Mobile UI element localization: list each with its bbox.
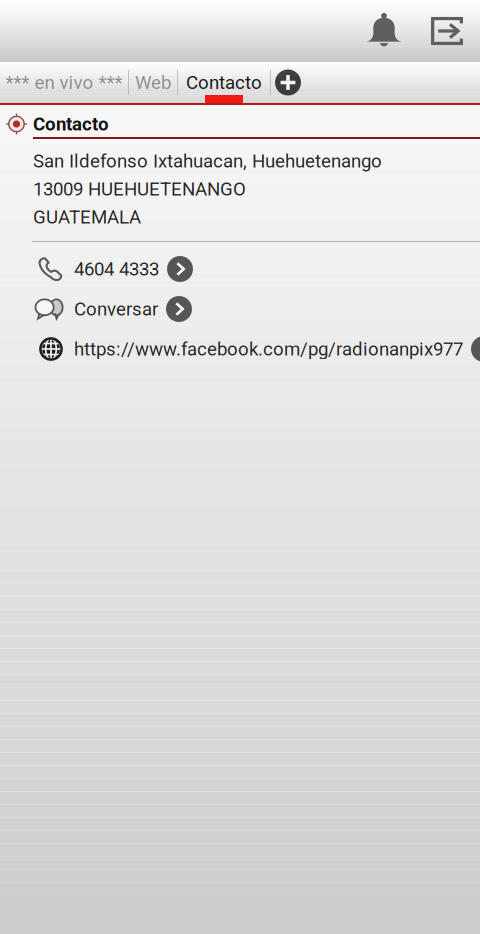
staticText: San Ildefonso Ixtahuacan, Huehuetenango bbox=[33, 150, 382, 172]
button[interactable]: Conversar bbox=[0, 289, 480, 329]
staticText: https://www.facebook.com/pg/radionanpix9… bbox=[74, 338, 463, 360]
staticText: 13009 HUEHUETENANGO bbox=[33, 178, 246, 200]
staticText: Contacto bbox=[33, 113, 109, 135]
staticText: GUATEMALA bbox=[33, 206, 141, 228]
staticText: Web bbox=[135, 72, 171, 93]
button[interactable]: Web bbox=[129, 62, 177, 103]
staticText: Contacto bbox=[186, 72, 262, 93]
button[interactable]: Notifications bbox=[352, 0, 416, 62]
button[interactable]: *** en vivo *** bbox=[0, 62, 128, 103]
button[interactable]: Sign out bbox=[416, 0, 478, 62]
staticText: Conversar bbox=[74, 298, 158, 320]
button[interactable]: Add bbox=[271, 62, 305, 103]
staticText: *** en vivo *** bbox=[5, 72, 122, 93]
staticText: 4604 4333 bbox=[74, 258, 159, 280]
button[interactable]: 4604 4333 bbox=[0, 249, 480, 289]
button[interactable]: Contacto bbox=[178, 62, 270, 103]
button[interactable]: https://www.facebook.com/pg/radionanpix9… bbox=[0, 329, 480, 369]
